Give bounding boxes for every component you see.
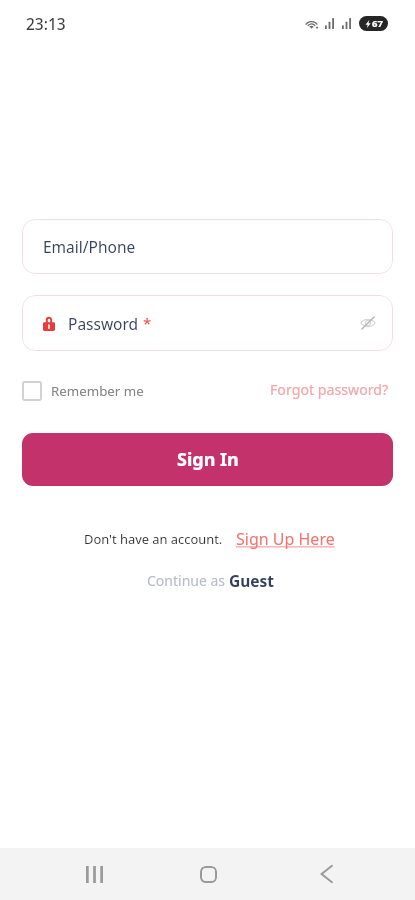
staticText: Guest bbox=[229, 570, 275, 591]
button[interactable]: Password bbox=[22, 295, 393, 351]
staticText: Password bbox=[68, 313, 139, 334]
button[interactable]: Sign In bbox=[22, 433, 393, 486]
staticText: Forgot password? bbox=[270, 380, 389, 399]
button[interactable]: Remember me bbox=[22, 381, 144, 401]
button[interactable]: Sign Up Here bbox=[236, 528, 335, 550]
button[interactable]: Email/Phone bbox=[22, 219, 393, 274]
button[interactable]: Forgot password? bbox=[270, 380, 389, 399]
staticText: Sign Up Here bbox=[236, 528, 335, 550]
staticText: * bbox=[143, 313, 152, 333]
button[interactable]: Home bbox=[170, 848, 246, 900]
button[interactable]: Back bbox=[288, 848, 364, 900]
button[interactable]: Recent apps bbox=[56, 848, 132, 900]
button[interactable]: Show password bbox=[355, 310, 381, 336]
staticText: Sign In bbox=[177, 447, 239, 472]
staticText: 67 bbox=[372, 17, 383, 30]
staticText: 23:13 bbox=[26, 13, 66, 34]
button[interactable]: Continue as bbox=[3, 569, 415, 591]
staticText: Email/Phone bbox=[43, 236, 136, 257]
staticText: Don't have an account. bbox=[84, 530, 223, 548]
staticText: Remember me bbox=[51, 382, 144, 400]
staticText: Continue as bbox=[147, 571, 229, 590]
